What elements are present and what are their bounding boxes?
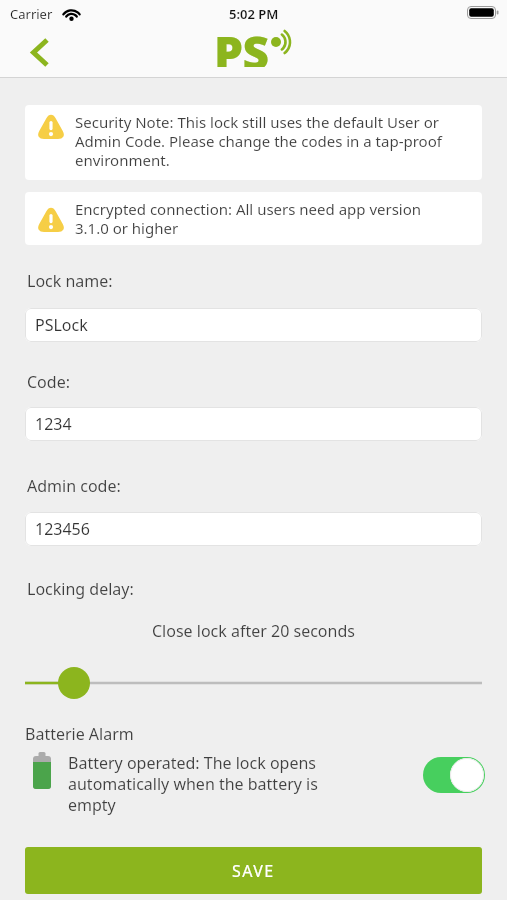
staticText: 5:02 PM [229, 5, 279, 23]
staticText: Code: [27, 371, 70, 393]
staticText: Admin code: [27, 475, 121, 497]
staticText: Encrypted connection: All users need app… [75, 199, 422, 238]
button[interactable] [19, 32, 61, 72]
staticText: Lock name: [27, 270, 113, 292]
button[interactable]: SAVE [25, 847, 482, 894]
staticText: Close lock after 20 seconds [152, 620, 355, 642]
button[interactable]: PSLock [25, 308, 482, 342]
staticText: Carrier [10, 5, 53, 23]
button[interactable]: 1234 [25, 407, 482, 441]
button[interactable] [423, 757, 485, 793]
staticText: 123456 [35, 518, 90, 540]
staticText: Locking delay: [27, 578, 134, 600]
staticText: PSLock [35, 314, 88, 336]
staticText: 1234 [35, 413, 72, 435]
staticText: Security Note: This lock still uses the … [75, 112, 442, 170]
staticText: Battery operated: The lock opens automat… [68, 752, 318, 816]
staticText: SAVE [232, 860, 275, 882]
staticText: Batterie Alarm [25, 723, 134, 745]
staticText: PS [214, 21, 269, 67]
button[interactable]: 123456 [25, 512, 482, 546]
button[interactable] [0, 663, 507, 703]
